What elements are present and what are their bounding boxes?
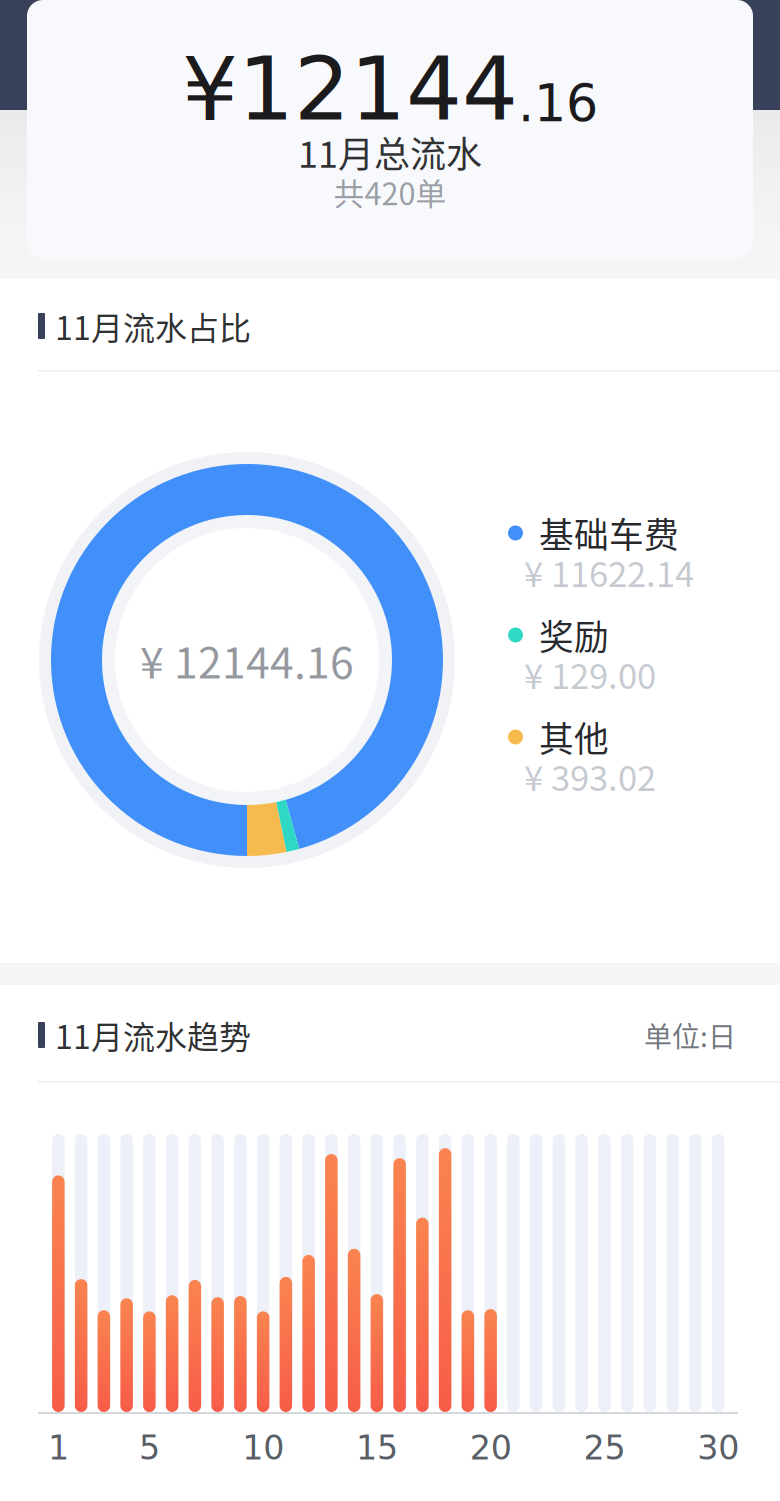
staticText: 其他 — [539, 712, 609, 762]
staticText: ¥ 11622.14 — [524, 547, 694, 597]
staticText: 5 — [139, 1429, 160, 1467]
staticText: 1 — [48, 1429, 69, 1467]
button[interactable]: 基础车费 — [508, 514, 728, 592]
staticText: 奖励 — [539, 610, 609, 660]
staticText: 30 — [697, 1429, 739, 1467]
staticText: ¥ 393.02 — [524, 751, 656, 801]
button[interactable]: 其他 — [508, 718, 728, 796]
staticText: 15 — [356, 1429, 398, 1467]
staticText: 20 — [470, 1429, 512, 1467]
staticText: 11月总流水 — [298, 126, 482, 178]
staticText: 共420单 — [333, 170, 446, 214]
staticText: 11月流水占比 — [55, 303, 251, 349]
staticText: 10 — [242, 1429, 284, 1467]
staticText: .16 — [518, 74, 598, 133]
button[interactable]: 奖励 — [508, 616, 728, 694]
staticText: 单位:日 — [644, 1015, 736, 1055]
staticText: ¥ 129.00 — [524, 649, 656, 699]
staticText: 11月流水趋势 — [55, 1012, 251, 1058]
staticText: ¥12144 — [182, 38, 518, 140]
staticText: 基础车费 — [539, 508, 679, 558]
staticText: ¥ 12144.16 — [140, 629, 354, 691]
staticText: 25 — [583, 1429, 625, 1467]
